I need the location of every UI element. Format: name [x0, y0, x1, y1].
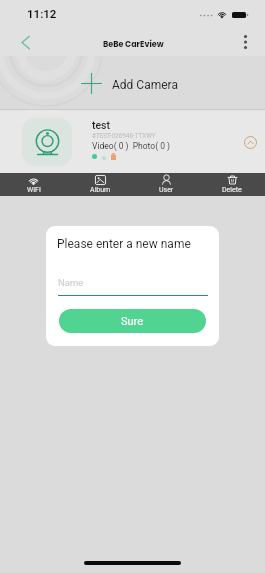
button[interactable]: Expand — [238, 130, 262, 154]
staticText: Delete — [222, 186, 242, 194]
button[interactable]: More options — [233, 30, 257, 54]
button[interactable]: test — [0, 110, 265, 173]
button[interactable]: Back — [10, 28, 41, 56]
button[interactable]: Add Camera — [0, 56, 265, 110]
staticText: WIFI — [27, 186, 41, 194]
staticText: Add Camera — [112, 78, 178, 92]
staticText: Name — [58, 277, 84, 288]
button[interactable]: Album — [67, 173, 133, 196]
button[interactable]: Delete — [199, 173, 265, 196]
staticText: test — [92, 119, 111, 131]
staticText: Album — [90, 186, 111, 194]
staticText: Please enter a new name — [57, 237, 191, 251]
button[interactable]: Sure — [59, 309, 206, 333]
staticText: User — [159, 186, 174, 194]
button[interactable]: User — [133, 173, 199, 196]
staticText: Video( 0 ) Photo( 0 ) — [92, 141, 171, 151]
button[interactable]: WIFI — [0, 173, 67, 196]
staticText: Sure — [121, 315, 144, 328]
staticText: #TEST-026946-TTXWY — [92, 132, 156, 139]
staticText: 11:12 — [27, 7, 57, 20]
staticText: BeBe CarEview — [103, 39, 164, 50]
